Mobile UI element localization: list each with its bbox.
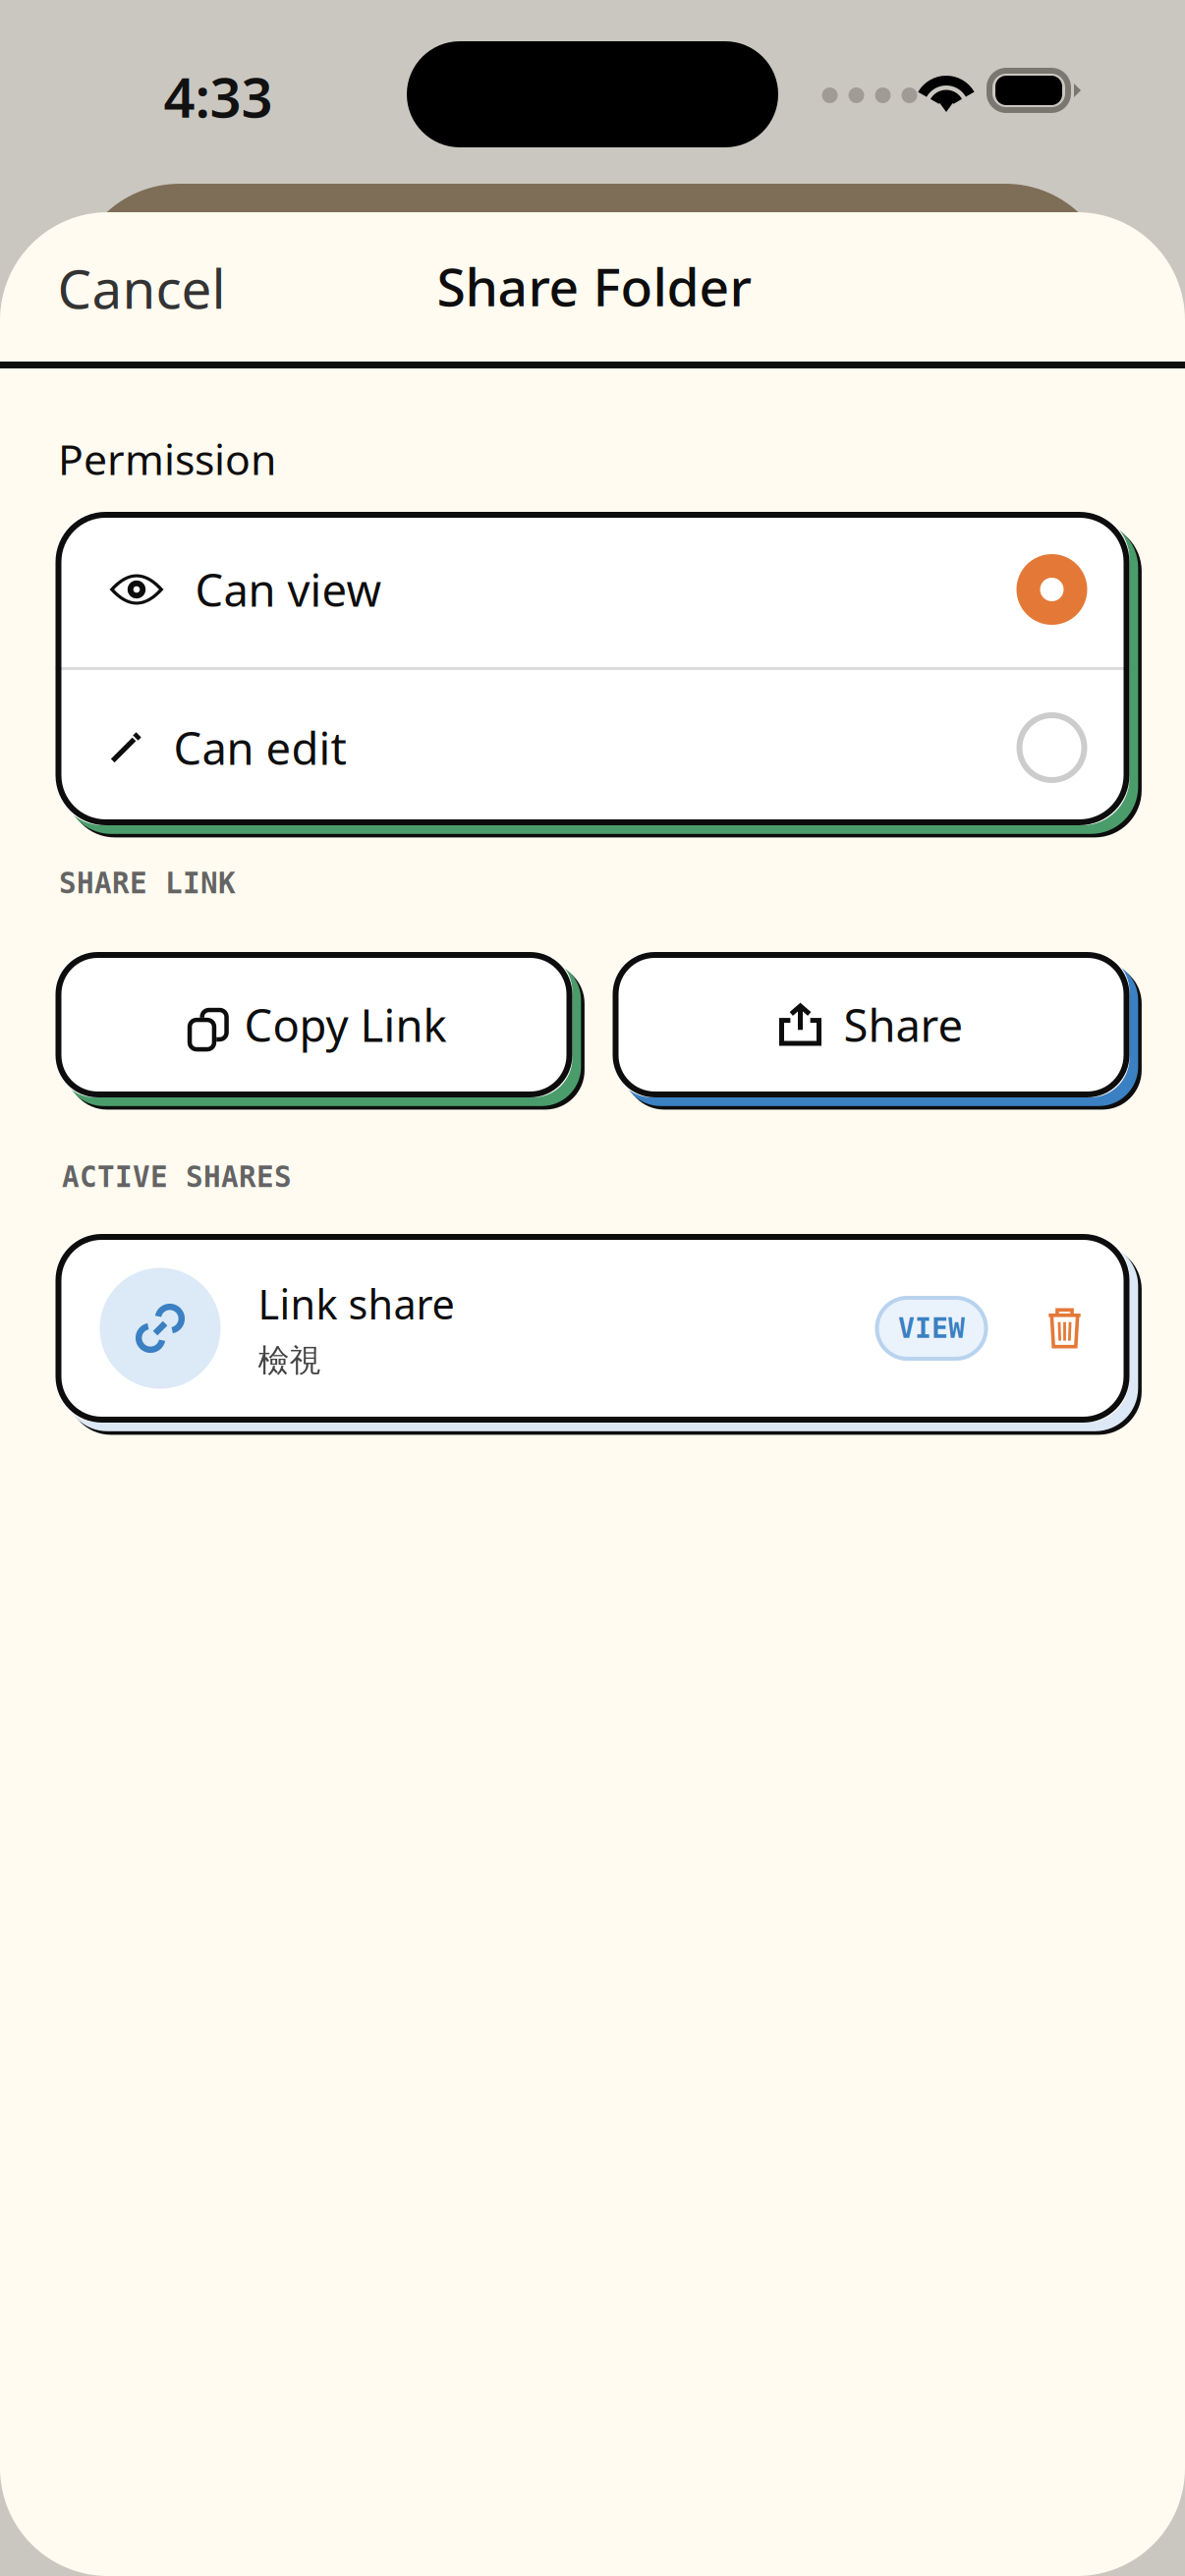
- button[interactable]: Cancel: [19, 229, 264, 347]
- staticText: 4:33: [164, 60, 273, 133]
- staticText: Permission: [58, 431, 276, 487]
- staticText: Can edit: [173, 718, 346, 777]
- button[interactable]: Can edit: [56, 670, 1129, 825]
- button[interactable]: Delete share: [1037, 1301, 1092, 1356]
- button[interactable]: VIEW: [875, 1296, 988, 1361]
- staticText: SHARE LINK: [59, 867, 236, 900]
- staticText: Copy Link: [244, 995, 447, 1054]
- staticText: Can view: [195, 560, 382, 619]
- staticText: Cancel: [57, 252, 226, 324]
- button[interactable]: Can view: [56, 512, 1129, 667]
- staticText: ACTIVE SHARES: [62, 1161, 292, 1193]
- staticText: 檢視: [258, 1341, 321, 1380]
- staticText: VIEW: [898, 1313, 965, 1344]
- staticText: Share Folder: [437, 251, 752, 321]
- button[interactable]: Share: [613, 952, 1129, 1097]
- button[interactable]: Copy Link: [56, 952, 572, 1097]
- staticText: Link share: [258, 1277, 454, 1331]
- staticText: Share: [844, 995, 963, 1054]
